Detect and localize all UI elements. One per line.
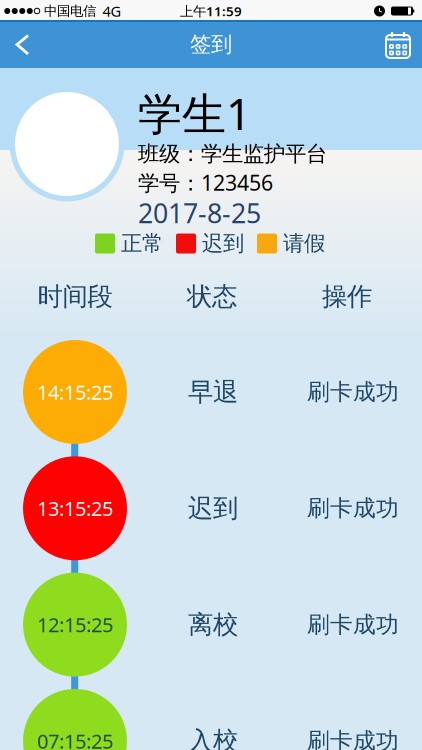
staticText: 13:15:25 (37, 495, 113, 522)
staticText: 学号：123456 (138, 168, 273, 197)
staticText: 正常 (121, 230, 163, 257)
staticText: 4G (102, 1, 121, 21)
staticText: 07:15:25 (37, 728, 113, 750)
staticText: 早退 (188, 376, 238, 407)
staticText: 请假 (283, 230, 325, 257)
staticText: 入校 (188, 725, 238, 750)
staticText: 迟到 (188, 493, 238, 524)
staticText: 上午11:59 (180, 2, 242, 20)
staticText: 刷卡成功 (307, 378, 399, 406)
button[interactable]: Calendar (377, 24, 419, 68)
staticText: 刷卡成功 (307, 494, 399, 522)
staticText: 操作 (322, 281, 372, 312)
staticText: 状态 (187, 281, 237, 312)
staticText: 刷卡成功 (307, 611, 399, 638)
staticText: 班级：学生监护平台 (138, 141, 327, 167)
staticText: 签到 (190, 31, 232, 58)
staticText: 12:15:25 (37, 611, 113, 638)
staticText: 2017-8-25 (138, 195, 261, 231)
staticText: 14:15:25 (37, 379, 113, 405)
staticText: 时间段 (37, 281, 112, 312)
staticText: 中国电信 (44, 3, 96, 19)
staticText: 迟到 (202, 230, 244, 257)
staticText: 学生1 (138, 84, 251, 142)
staticText: 刷卡成功 (307, 727, 399, 750)
button[interactable]: Back (0, 22, 43, 68)
staticText: 离校 (188, 609, 238, 640)
